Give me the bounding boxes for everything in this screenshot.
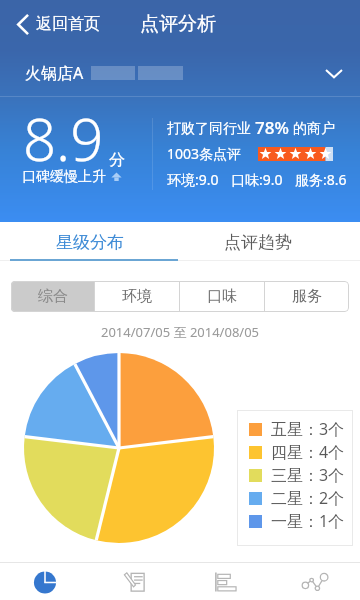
staticText: 一星：1个	[271, 510, 345, 532]
staticText: 2014/07/05 至 2014/08/05	[0, 323, 360, 341]
staticText: 分	[109, 150, 125, 170]
staticText: 五星：3个	[271, 418, 345, 440]
staticText: 火锅店A	[25, 62, 84, 84]
staticText: 四星：4个	[271, 441, 345, 463]
staticText: 三星：3个	[271, 464, 345, 486]
button[interactable]: 点评趋势	[180, 225, 335, 259]
staticText: 口味	[207, 287, 237, 306]
button[interactable]: Trends	[270, 562, 360, 600]
button[interactable]: 星级分布	[0, 225, 180, 259]
button[interactable]: 口味	[180, 281, 264, 312]
button[interactable]: Review management	[90, 562, 180, 600]
button[interactable]: 综合	[11, 281, 94, 312]
staticText: 环境:9.0	[167, 170, 219, 189]
button[interactable]: 火锅店A	[0, 56, 360, 90]
staticText: 环境	[122, 287, 152, 306]
staticText: 服务	[292, 287, 322, 306]
staticText: 8.9	[23, 99, 104, 178]
staticText: 打败了同行业	[167, 120, 251, 138]
staticText: 综合	[38, 287, 68, 306]
staticText: 返回首页	[36, 14, 100, 34]
staticText: 口碑缓慢上升	[22, 168, 106, 186]
staticText: 服务:8.6	[295, 170, 347, 189]
staticText: 78%	[255, 116, 289, 139]
staticText: 点评分析	[140, 12, 216, 36]
button[interactable]: 环境	[95, 281, 179, 312]
staticText: 点评趋势	[224, 232, 292, 253]
button[interactable]: 服务	[265, 281, 349, 312]
staticText: 星级分布	[56, 232, 124, 253]
staticText: 口味:9.0	[231, 170, 283, 189]
button[interactable]: Ranking	[180, 562, 270, 600]
button[interactable]: 返回首页	[0, 0, 110, 48]
button[interactable]: Pie chart analysis	[0, 562, 90, 600]
staticText: 的商户	[293, 120, 335, 138]
staticText: 1003条点评	[167, 144, 242, 163]
staticText: 二星：2个	[271, 487, 345, 509]
